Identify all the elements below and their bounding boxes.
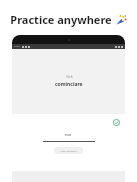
staticText: Verb bbox=[66, 75, 73, 79]
staticText: noi bbox=[65, 132, 72, 137]
staticText: 12:04 bbox=[14, 45, 20, 48]
button[interactable]: Correct bbox=[113, 119, 120, 126]
staticText: Next question bbox=[60, 149, 77, 152]
button[interactable]: Next question bbox=[54, 147, 83, 154]
staticText: cominciare bbox=[55, 81, 83, 88]
staticText: Practice anywhere bbox=[10, 12, 112, 27]
